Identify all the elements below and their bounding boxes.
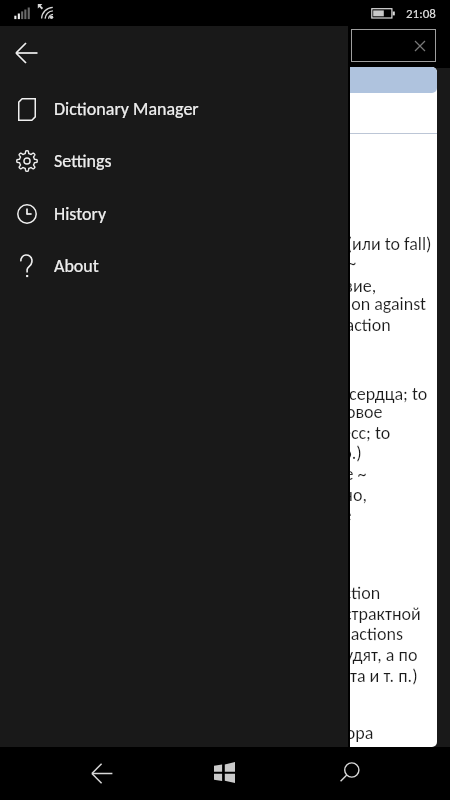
staticText: 4) воен. бой, сражение; вступление ~ [81,463,367,485]
staticText: 3) де́йствие, рабо́та; биение сердца; to [127,381,428,406]
staticText: 2) посту́пок, де́яние, де́йствие, [138,273,377,298]
other: Clear search [415,41,425,51]
button[interactable]: Back [41,747,163,800]
staticText: 21:08 [406,6,436,22]
staticText: put out of ~ вывести из строя (чего-о.) [74,442,362,464]
button[interactable]: Start [163,747,286,800]
staticText: выступление; to take ~ against — take ac… [38,293,427,315]
staticText: History [54,203,107,225]
staticText: into ~; приводить в действие; to put in … [53,252,357,274]
button[interactable]: Back [2,29,50,77]
staticText: форме; deed — подвиг, деяние; actions [104,623,403,645]
button[interactable]: About [0,240,348,292]
staticText: Dictionary Manager [54,98,199,120]
staticText: вступать в бой; killed in ~ убитно, [116,484,367,506]
staticText: Syn: act — общее слово; action [146,582,381,604]
button[interactable]: Search [286,747,409,800]
button[interactable]: Settings [0,135,348,187]
staticText: их последствиям (дела, поступки, эффекет… [32,665,418,687]
staticText: оценивают по результату, о них судят, а … [92,644,418,666]
staticText: погибшие в бою; 5) юр. иск, дело, деле [51,504,352,526]
button[interactable]: History [0,188,348,240]
staticText: About [54,255,99,277]
button[interactable]: Dictionary Manager [0,83,348,135]
button[interactable]: Clear search [352,30,435,61]
staticText: де́йствие; посту́пок; to take ~ (или to … [120,231,432,256]
staticText: Settings [54,150,112,172]
staticText: принимать меры против; to bring an actio… [65,314,391,336]
staticText: подразумевает деятельность в абстрактной [86,603,421,625]
staticText: сооружение; to come into ~ процесс; to [92,422,391,444]
staticText: Сокращённый вариант Оксфордского словаря… [0,722,374,744]
staticText: put smth in ~ пустить в ход; новое [126,401,383,423]
